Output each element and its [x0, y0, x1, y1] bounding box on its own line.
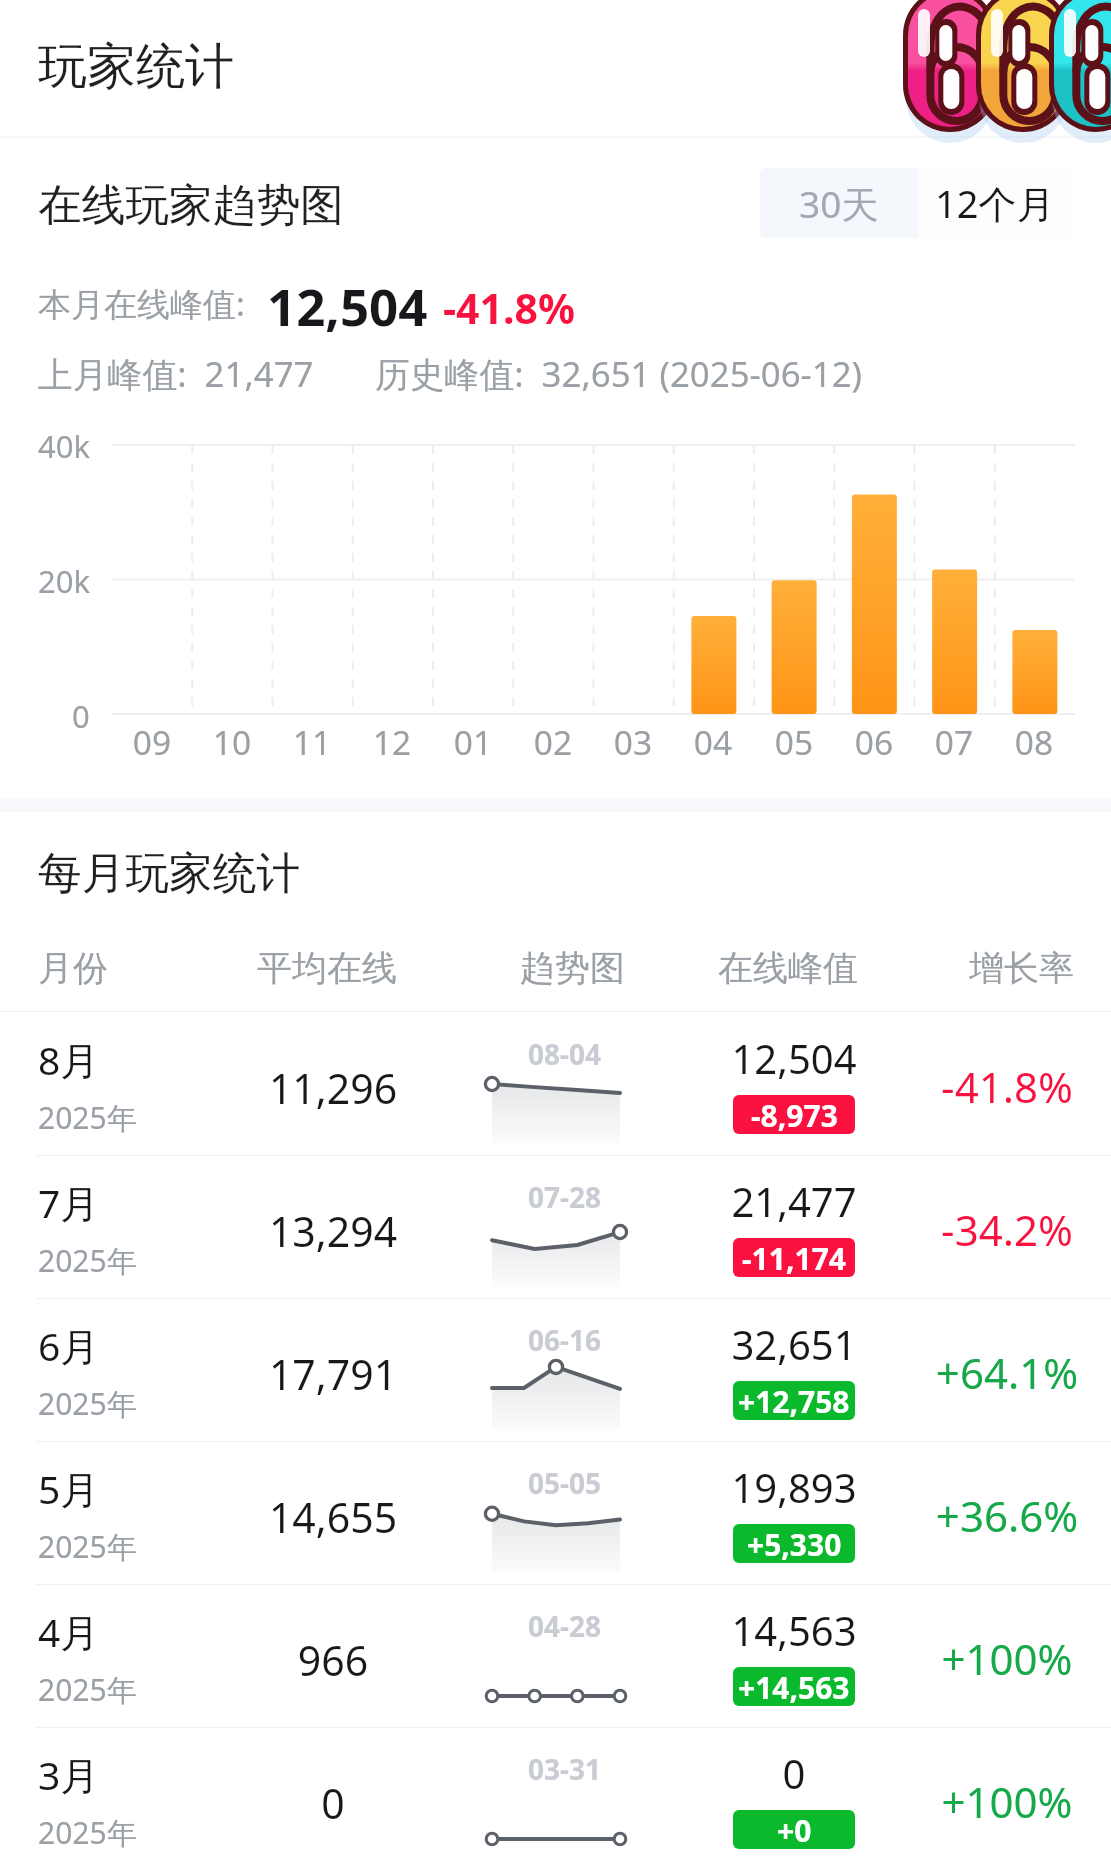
staticText: 0	[679, 1746, 909, 1800]
staticText: 13,294	[218, 1203, 448, 1259]
staticText: 12,504	[267, 271, 428, 340]
button[interactable]: 4月	[0, 1584, 1111, 1727]
staticText: 04	[673, 719, 753, 765]
staticText: 10	[192, 719, 272, 765]
staticText: +100%	[907, 1630, 1107, 1687]
staticText: 玩家统计	[38, 36, 234, 98]
staticText: 06	[834, 719, 914, 765]
staticText: 月份	[38, 946, 108, 990]
staticText: 12个月	[935, 177, 1055, 229]
staticText: 2025年	[38, 1097, 137, 1138]
staticText: +5,330	[747, 1524, 842, 1563]
staticText: 12	[352, 719, 432, 765]
staticText: 02	[513, 719, 593, 765]
staticText: 03-31	[528, 1750, 602, 1788]
staticText: 14,563	[679, 1603, 909, 1657]
staticText: 平均在线	[257, 946, 397, 990]
staticText: 20k	[38, 560, 91, 602]
staticText: 0	[72, 695, 90, 737]
staticText: 09	[112, 719, 192, 765]
staticText: 8月	[38, 1033, 100, 1086]
staticText: 在线玩家趋势图	[38, 178, 344, 233]
staticText: 21,477	[679, 1174, 909, 1228]
staticText: -41.8%	[443, 280, 575, 336]
staticText: 04-28	[528, 1607, 602, 1645]
staticText: 历史峰值: 32,651 (2025-06-12)	[375, 350, 863, 398]
staticText: 01	[433, 719, 513, 765]
staticText: 06-16	[528, 1321, 602, 1359]
button[interactable]: 7月	[0, 1155, 1111, 1298]
staticText: +14,563	[738, 1667, 850, 1706]
staticText: +100%	[907, 1773, 1107, 1830]
staticText: 6月	[38, 1319, 100, 1372]
staticText: 2025年	[38, 1812, 137, 1853]
staticText: 19,893	[679, 1460, 909, 1514]
button[interactable]: 3月	[0, 1727, 1111, 1860]
staticText: 966	[218, 1632, 448, 1688]
staticText: 30天	[799, 178, 879, 229]
staticText: 2025年	[38, 1383, 137, 1424]
staticText: 12,504	[679, 1031, 909, 1085]
staticText: 08	[994, 719, 1074, 765]
staticText: 07-28	[528, 1178, 602, 1216]
staticText: 7月	[38, 1176, 100, 1229]
staticText: 2025年	[38, 1669, 137, 1710]
staticText: 在线峰值	[718, 946, 858, 990]
staticText: 05-05	[528, 1464, 602, 1502]
staticText: 32,651	[679, 1317, 909, 1371]
staticText: -34.2%	[907, 1201, 1107, 1258]
staticText: 05	[754, 719, 834, 765]
staticText: -8,973	[751, 1095, 838, 1134]
staticText: +12,758	[738, 1381, 850, 1420]
staticText: +0	[777, 1810, 812, 1849]
staticText: 4月	[38, 1605, 100, 1658]
button[interactable]: 12个月	[918, 168, 1072, 238]
staticText: 2025年	[38, 1240, 137, 1281]
staticText: 17,791	[218, 1346, 448, 1402]
staticText: 07	[914, 719, 994, 765]
staticText: 14,655	[218, 1489, 448, 1545]
staticText: 08-04	[528, 1035, 602, 1073]
staticText: 11,296	[218, 1060, 448, 1116]
staticText: +36.6%	[907, 1487, 1107, 1544]
staticText: -41.8%	[907, 1058, 1107, 1115]
staticText: 2025年	[38, 1526, 137, 1567]
staticText: 本月在线峰值:	[38, 281, 245, 326]
button[interactable]: 6月	[0, 1298, 1111, 1441]
staticText: 11	[272, 719, 352, 765]
staticText: 40k	[38, 425, 91, 467]
button[interactable]: 5月	[0, 1441, 1111, 1584]
staticText: 趋势图	[520, 946, 625, 990]
staticText: -11,174	[742, 1238, 846, 1277]
staticText: 03	[593, 719, 673, 765]
staticText: 增长率	[969, 946, 1074, 990]
staticText: 上月峰值: 21,477	[38, 350, 314, 398]
staticText: 每月玩家统计	[38, 846, 301, 901]
button[interactable]: 8月	[0, 1012, 1111, 1155]
staticText: +64.1%	[907, 1344, 1107, 1401]
button[interactable]: 30天	[760, 168, 918, 238]
staticText: 0	[218, 1775, 448, 1831]
staticText: 5月	[38, 1462, 100, 1515]
staticText: 3月	[38, 1748, 100, 1801]
